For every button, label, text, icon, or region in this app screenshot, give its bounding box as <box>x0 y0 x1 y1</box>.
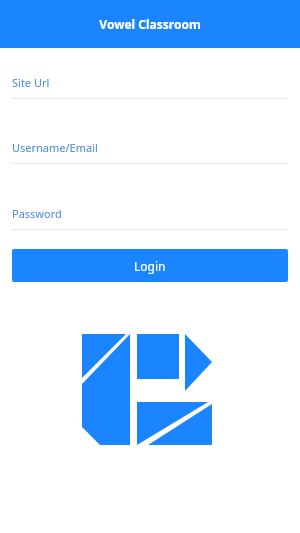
button[interactable]: Username/Email <box>0 127 300 164</box>
staticText: Username/Email <box>12 140 98 155</box>
staticText: Site Url <box>12 75 50 90</box>
button[interactable]: Password <box>0 193 300 230</box>
button[interactable]: Login <box>12 249 288 282</box>
other: Vowel Classroom logo <box>82 334 212 445</box>
button[interactable]: Site Url <box>0 62 300 99</box>
staticText: Login <box>134 258 166 274</box>
staticText: Vowel Classroom <box>99 16 201 32</box>
staticText: Password <box>12 206 62 221</box>
